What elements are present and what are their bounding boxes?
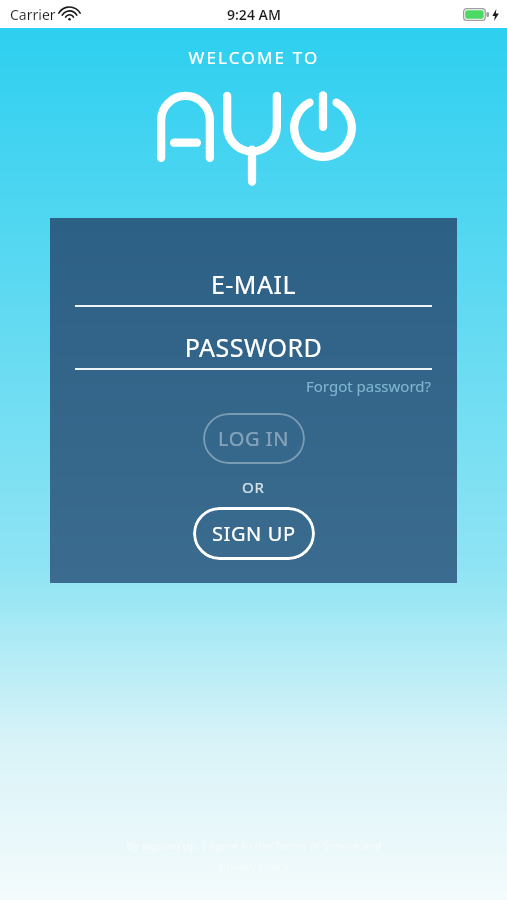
staticText: PASSWORD [75,330,432,364]
button[interactable]: SIGN UP [193,507,315,560]
staticText: Forgot password? [306,376,432,396]
staticText: SIGN UP [212,520,296,547]
staticText: E-MAIL [75,267,432,301]
staticText: 9:24 AM [227,5,281,24]
button[interactable]: PASSWORD [75,330,432,370]
staticText: LOG IN [218,425,290,452]
staticText: OR [242,477,265,497]
button[interactable]: Forgot password? [75,376,432,396]
button[interactable]: E-MAIL [75,267,432,307]
staticText: Carrier [10,5,56,24]
button[interactable]: LOG IN [203,413,305,464]
staticText: By signing up, I agree to the Terms of S… [126,838,382,853]
staticText: WELCOME TO [188,46,320,69]
